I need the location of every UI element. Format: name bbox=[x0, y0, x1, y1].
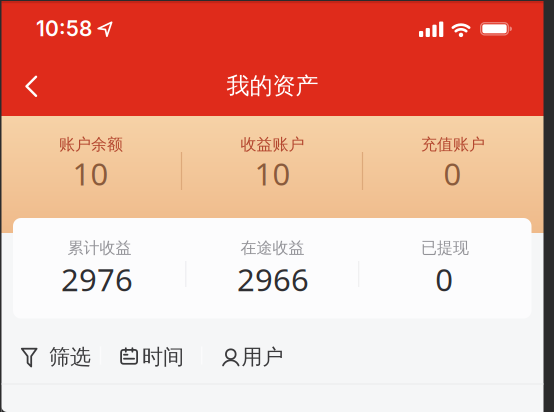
staticText: 时间 bbox=[142, 344, 184, 370]
staticText: 收益账户 bbox=[240, 134, 304, 155]
staticText: 已提现 bbox=[421, 238, 469, 258]
staticText: 在途收益 bbox=[240, 238, 304, 258]
button[interactable]: 筛选 bbox=[21, 342, 93, 372]
button[interactable]: 用户 bbox=[221, 342, 283, 372]
staticText: 2976 bbox=[61, 258, 133, 300]
staticText: 筛选 bbox=[49, 344, 91, 370]
staticText: 0 bbox=[435, 258, 453, 300]
staticText: 0 bbox=[443, 152, 461, 195]
staticText: 用户 bbox=[242, 344, 284, 370]
staticText: 10 bbox=[254, 152, 290, 195]
staticText: 充值账户 bbox=[421, 134, 485, 155]
button[interactable]: 时间 bbox=[118, 342, 184, 372]
staticText: 10:58 bbox=[36, 16, 92, 41]
staticText: 10 bbox=[72, 152, 108, 195]
staticText: 账户余额 bbox=[59, 134, 123, 155]
button[interactable]: Back bbox=[21, 75, 41, 98]
staticText: 2966 bbox=[237, 258, 309, 300]
staticText: 累计收益 bbox=[67, 238, 131, 258]
staticText: 我的资产 bbox=[226, 71, 318, 100]
